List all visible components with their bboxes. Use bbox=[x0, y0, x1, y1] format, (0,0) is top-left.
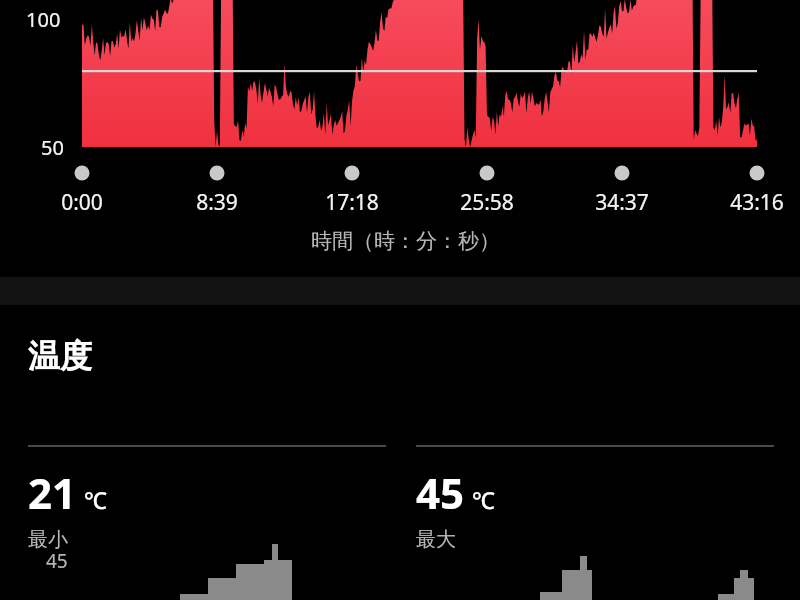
staticText: 最大 bbox=[416, 527, 456, 552]
staticText: 25:58 bbox=[460, 188, 514, 217]
staticText: 温度 bbox=[28, 336, 92, 376]
staticText: 8:39 bbox=[196, 188, 238, 217]
staticText: 21 bbox=[28, 464, 77, 521]
staticText: 時間（時：分：秒） bbox=[311, 228, 500, 254]
staticText: 最小 bbox=[28, 527, 68, 552]
staticText: 50 bbox=[41, 134, 64, 161]
staticText: 100 bbox=[26, 6, 61, 33]
button[interactable]: 45 bbox=[416, 445, 774, 552]
staticText: ℃ bbox=[472, 484, 495, 515]
staticText: 45 bbox=[46, 548, 68, 574]
button[interactable]: 21 bbox=[28, 445, 386, 552]
staticText: 0:00 bbox=[61, 188, 103, 217]
staticText: 17:18 bbox=[325, 188, 379, 217]
staticText: 34:37 bbox=[595, 188, 649, 217]
staticText: 43:16 bbox=[730, 188, 784, 217]
staticText: ℃ bbox=[84, 484, 107, 515]
staticText: 45 bbox=[416, 464, 465, 521]
